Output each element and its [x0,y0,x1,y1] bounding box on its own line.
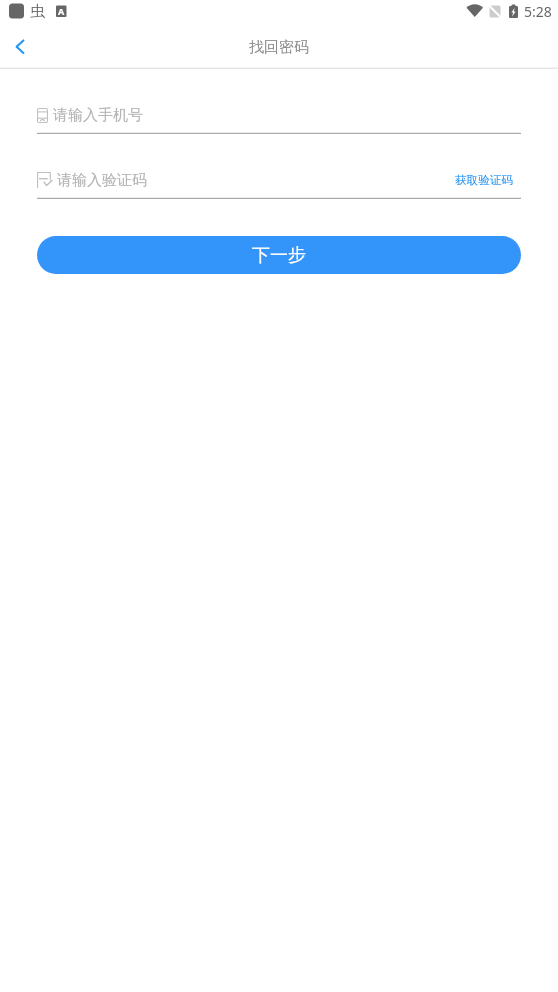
staticText: 请输入验证码 [57,171,147,190]
staticText: 下一步 [252,244,306,267]
staticText: 5:28 [524,2,552,21]
staticText: 获取验证码 [455,173,513,188]
staticText: A [58,5,65,17]
staticText: 虫 [30,2,45,21]
button[interactable]: 返回 [0,28,40,67]
staticText: 请输入手机号 [53,106,143,125]
button[interactable]: 下一步 [37,236,521,274]
button[interactable]: 获取验证码 [449,171,521,190]
staticText: 找回密码 [249,38,309,57]
